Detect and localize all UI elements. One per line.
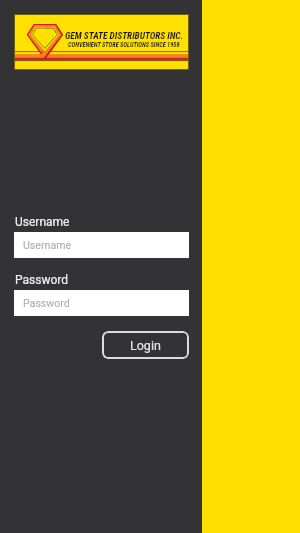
other: Gem State Distributors Inc. logo — [14, 14, 189, 70]
staticText: Password — [23, 297, 70, 309]
staticText: GEM STATE DISTRIBUTORS INC. — [65, 30, 184, 41]
button[interactable]: Username — [14, 232, 189, 258]
button[interactable]: Password — [14, 290, 189, 316]
staticText: Username — [15, 215, 70, 229]
button[interactable]: Login — [102, 331, 189, 359]
staticText: Login — [130, 338, 161, 353]
staticText: CONVENIENT STORE SOLUTIONS SINCE 1958 — [68, 41, 180, 48]
staticText: Password — [15, 273, 69, 287]
staticText: Username — [23, 239, 72, 251]
